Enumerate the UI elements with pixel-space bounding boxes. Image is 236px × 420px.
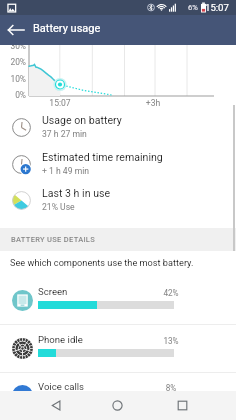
button[interactable]: Back — [3, 21, 30, 39]
staticText: 10% — [0, 74, 26, 84]
staticText: Estimated time remaining — [42, 151, 163, 163]
staticText: Last 3 h in use — [42, 187, 111, 199]
staticText: Screen — [38, 286, 68, 297]
staticText: 15:07 — [205, 2, 229, 13]
button[interactable]: Voice calls — [0, 373, 236, 420]
staticText: Phone idle — [38, 334, 83, 345]
staticText: Voice calls — [38, 381, 85, 392]
button[interactable]: Phone idle — [0, 326, 236, 373]
staticText: 37 h 27 min — [42, 129, 87, 139]
button[interactable]: Last 3 h in use — [0, 183, 236, 219]
staticText: 30% — [0, 41, 26, 51]
staticText: See which components use the most batter… — [10, 257, 194, 268]
button[interactable]: Usage on battery — [0, 110, 236, 146]
button[interactable]: Back — [37, 391, 76, 420]
staticText: Usage on battery — [42, 114, 122, 126]
staticText: 15:07 — [44, 98, 76, 108]
staticText: Battery usage — [33, 22, 101, 35]
staticText: 6% — [188, 3, 198, 12]
staticText: 13% — [156, 336, 186, 346]
staticText: 42% — [156, 288, 186, 298]
staticText: +3h — [140, 98, 166, 108]
button[interactable]: Recents — [163, 391, 202, 420]
staticText: 0% — [0, 90, 26, 100]
button[interactable]: Home — [98, 391, 137, 420]
staticText: 20% — [0, 57, 26, 67]
staticText: + 1 h 49 min — [42, 166, 89, 176]
button[interactable]: Estimated time remaining — [0, 147, 236, 183]
button[interactable]: Screen — [0, 278, 236, 325]
staticText: BATTERY USE DETAILS — [11, 235, 96, 244]
staticText: 8% — [156, 383, 186, 393]
staticText: 21% Use — [42, 202, 75, 212]
